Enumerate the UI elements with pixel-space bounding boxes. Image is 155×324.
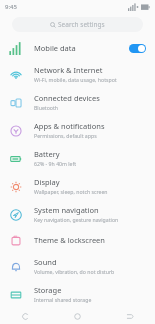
- staticText: Sound: [34, 257, 57, 267]
- button[interactable]: Mobile data: [0, 36, 155, 60]
- staticText: Key navigation, gesture navigation: [34, 216, 119, 223]
- button[interactable]: Battery: [0, 144, 155, 172]
- button[interactable]: System navigation: [0, 200, 155, 228]
- staticText: System navigation: [34, 205, 99, 215]
- button[interactable]: Apps & notifications: [0, 116, 155, 144]
- staticText: Bluetooth: [34, 104, 59, 111]
- staticText: Connected devices: [34, 93, 100, 103]
- staticText: Volume, vibration, do not disturb: [34, 268, 115, 275]
- button[interactable]: Connected devices: [0, 88, 155, 116]
- button[interactable]: Back: [103, 309, 155, 324]
- button[interactable]: Recent apps: [0, 309, 51, 324]
- staticText: Mobile data: [34, 43, 76, 53]
- button[interactable]: Network & Internet: [0, 60, 155, 88]
- staticText: Storage: [34, 285, 62, 295]
- button[interactable]: Home: [51, 309, 103, 324]
- button[interactable]: Search settings: [12, 17, 143, 32]
- staticText: Battery: [34, 149, 60, 159]
- staticText: Wi-Fi, mobile, data usage, hotspot: [34, 76, 117, 83]
- staticText: Theme & lockscreen: [34, 235, 105, 245]
- button[interactable]: Mobile data toggle: [129, 44, 146, 53]
- staticText: Permissions, default apps: [34, 132, 97, 139]
- staticText: Display: [34, 177, 60, 187]
- staticText: 62% - 9h 40m left: [34, 160, 77, 167]
- button[interactable]: Theme & lockscreen: [0, 228, 155, 252]
- button[interactable]: Display: [0, 172, 155, 200]
- staticText: Wallpaper, sleep, notch screen: [34, 188, 108, 195]
- staticText: Apps & notifications: [34, 121, 105, 131]
- staticText: Search settings: [58, 20, 105, 29]
- staticText: Internal shared storage: [34, 296, 92, 303]
- staticText: 9:45: [5, 3, 17, 11]
- button[interactable]: Storage: [0, 280, 155, 308]
- staticText: Network & Internet: [34, 65, 103, 75]
- button[interactable]: Sound: [0, 252, 155, 280]
